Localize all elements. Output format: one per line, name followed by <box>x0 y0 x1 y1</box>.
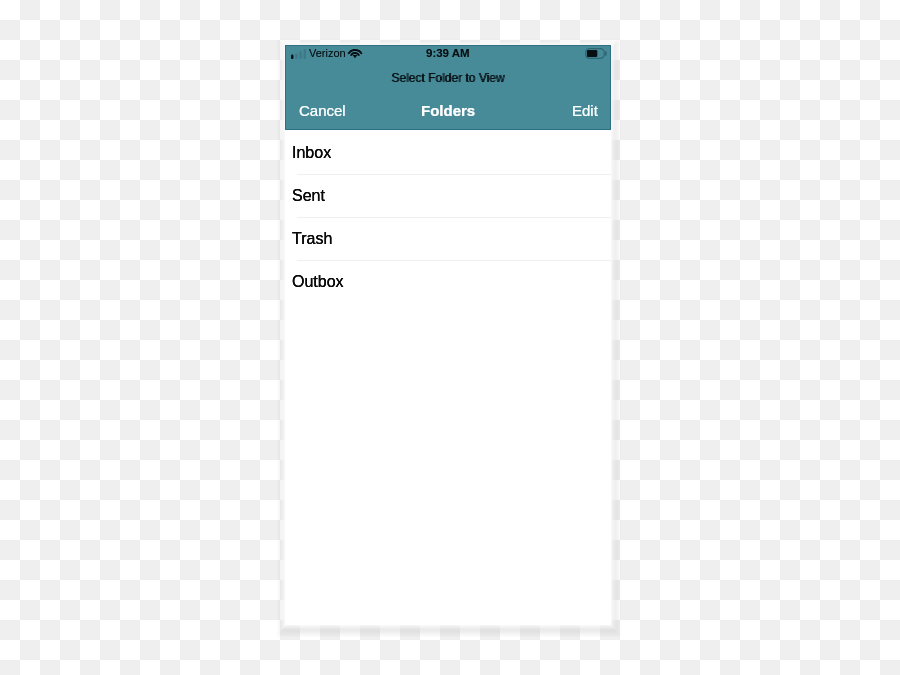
other: Wi-Fi <box>348 48 362 58</box>
staticText: Outbox <box>292 273 344 291</box>
staticText: Sent <box>292 187 325 205</box>
other: Cellular signal strength <box>291 49 306 59</box>
staticText: Outbox <box>292 273 344 291</box>
staticText: Edit <box>572 102 598 119</box>
button[interactable]: Edit <box>558 96 611 125</box>
staticText: Inbox <box>292 144 332 162</box>
other: Battery <box>585 48 607 59</box>
staticText: Verizon <box>309 47 346 59</box>
button[interactable]: Sent <box>285 175 611 218</box>
staticText: Outbox <box>292 273 344 291</box>
staticText: Inbox <box>292 144 332 162</box>
staticText: 9:39 AM <box>426 47 470 60</box>
staticText: Sent <box>292 187 325 205</box>
button[interactable]: Outbox <box>285 261 611 304</box>
staticText: Cancel <box>299 102 346 119</box>
staticText: Select Folder to View <box>392 71 506 84</box>
staticText: Outbox <box>292 273 344 291</box>
button[interactable]: Inbox <box>285 132 611 175</box>
button[interactable]: Cancel <box>285 96 360 125</box>
staticText: Trash <box>292 230 333 248</box>
staticText: Folders <box>421 102 476 119</box>
staticText: Inbox <box>292 144 332 162</box>
staticText: Select Folder to View <box>391 71 505 84</box>
staticText: Trash <box>292 230 333 248</box>
staticText: Trash <box>292 230 333 248</box>
staticText: Sent <box>292 187 325 205</box>
staticText: Verizon <box>309 47 346 59</box>
staticText: 9:39 AM <box>426 47 470 60</box>
staticText: Trash <box>292 230 333 248</box>
staticText: Sent <box>292 187 325 205</box>
button[interactable]: Trash <box>285 218 611 261</box>
staticText: Inbox <box>292 144 332 162</box>
